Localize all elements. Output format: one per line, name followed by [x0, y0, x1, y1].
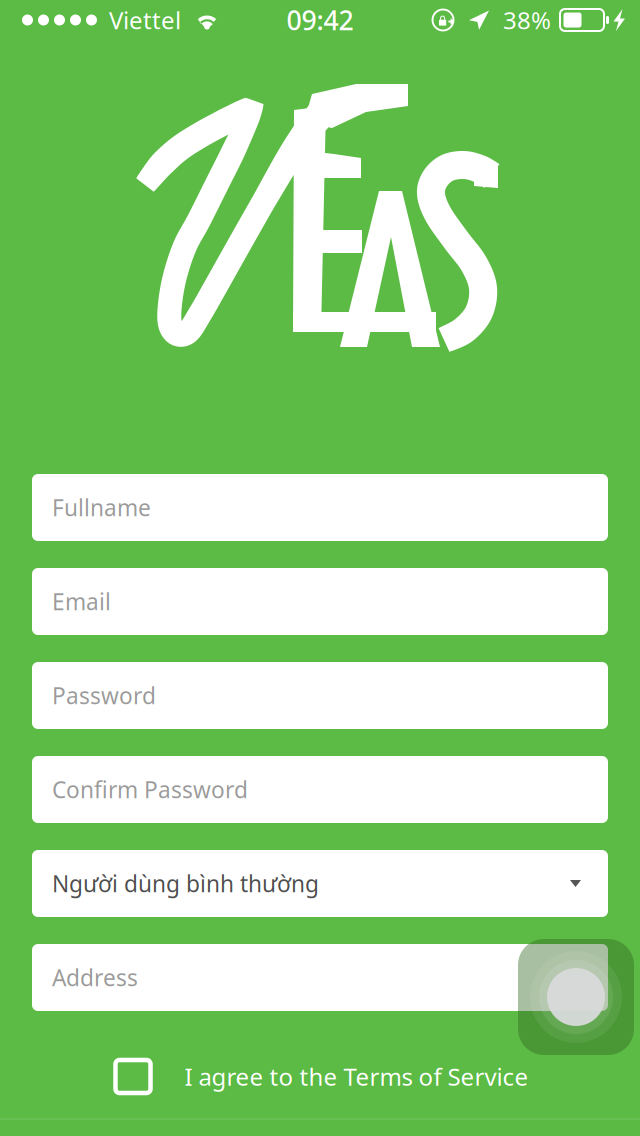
- staticText: Fullname: [52, 492, 151, 522]
- button[interactable]: Address: [32, 944, 608, 1011]
- button[interactable]: Password: [32, 662, 608, 729]
- staticText: Address: [52, 962, 138, 992]
- button[interactable]: Fullname: [32, 474, 608, 541]
- button[interactable]: Người dùng bình thường: [32, 850, 608, 917]
- staticText: Confirm Password: [52, 774, 248, 804]
- staticText: I agree to the Terms of Service: [184, 1061, 528, 1092]
- staticText: Người dùng bình thường: [52, 868, 319, 898]
- button[interactable]: Confirm Password: [32, 756, 608, 823]
- staticText: Viettel: [109, 4, 181, 36]
- button[interactable]: AssistiveTouch: [518, 939, 634, 1055]
- staticText: Email: [52, 586, 111, 616]
- staticText: 09:42: [286, 2, 353, 38]
- staticText: Password: [52, 680, 156, 710]
- button[interactable]: I agree to the Terms of Service: [0, 1011, 640, 1118]
- button[interactable]: Email: [32, 568, 608, 635]
- staticText: 38%: [503, 4, 551, 36]
